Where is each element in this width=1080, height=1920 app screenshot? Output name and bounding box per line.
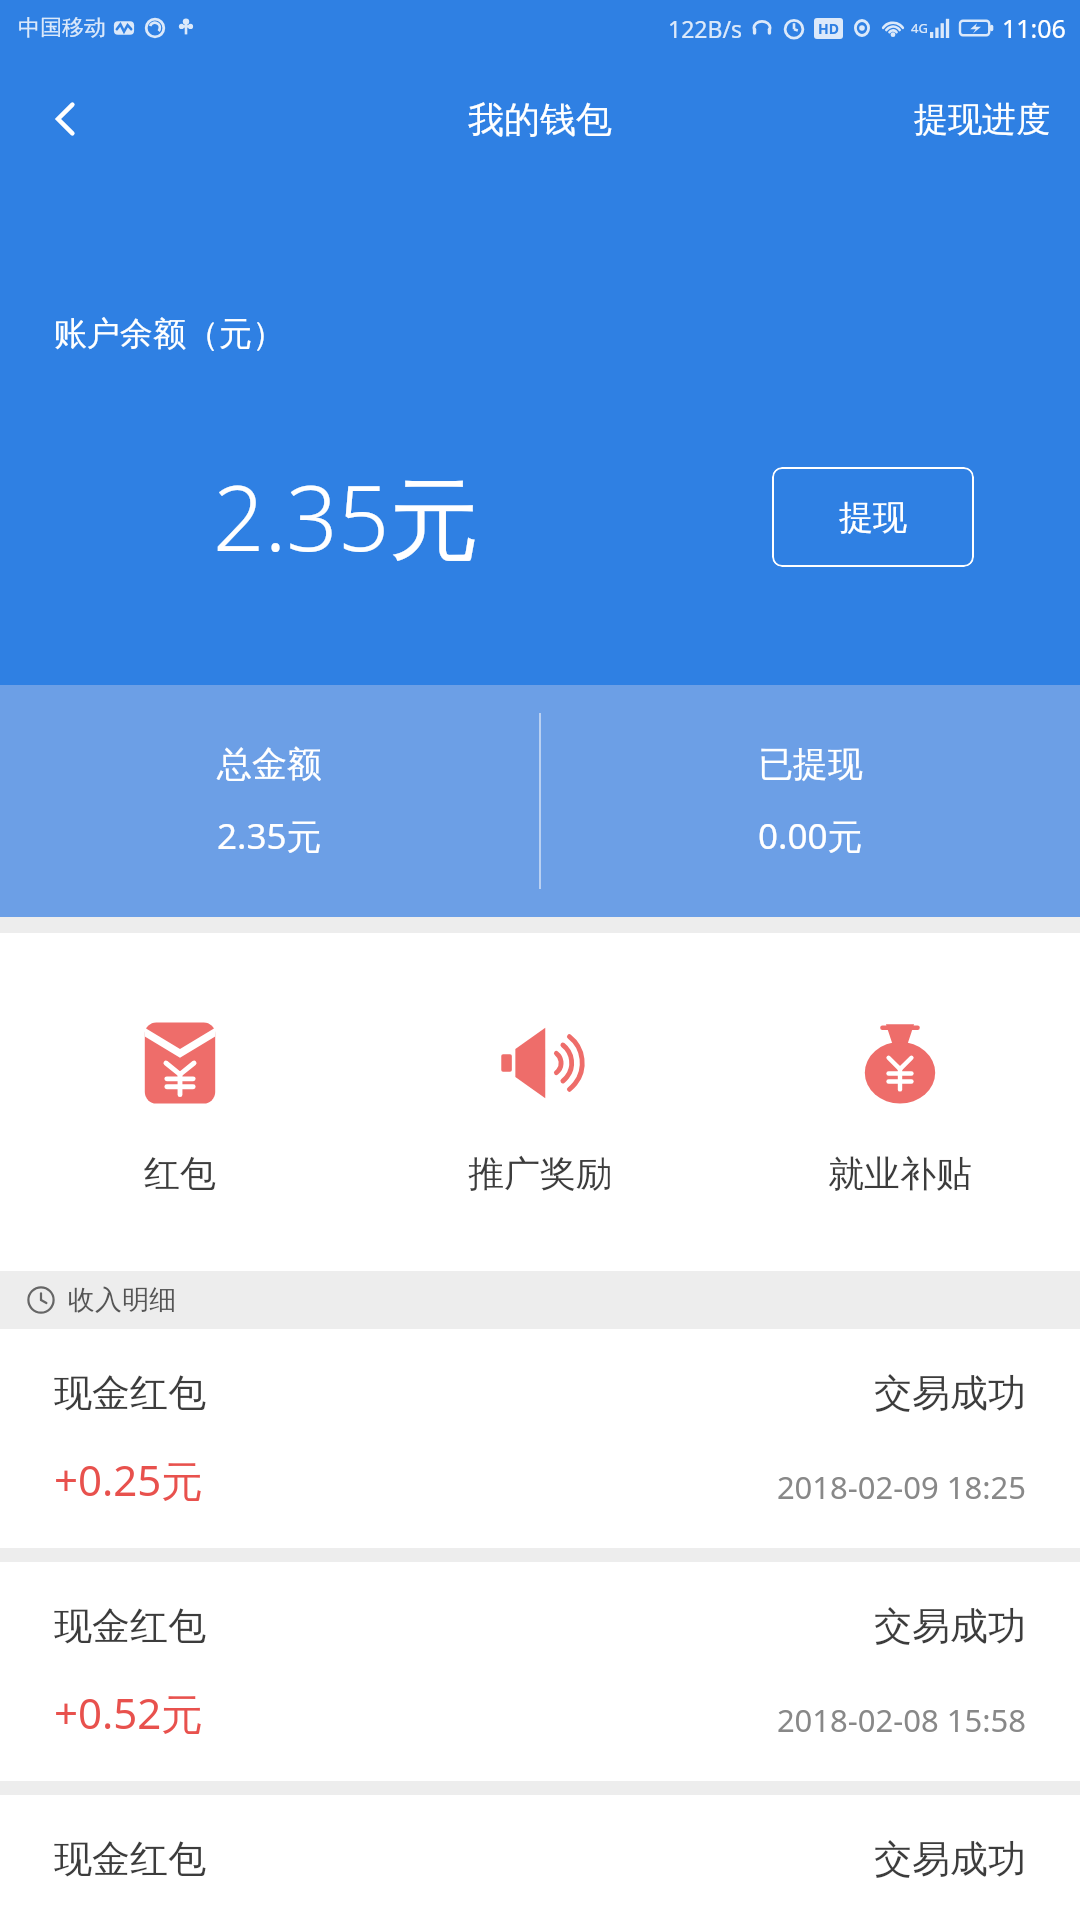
staticText: 现金红包	[54, 1602, 206, 1650]
button[interactable]: 返回	[34, 87, 98, 151]
button[interactable]: 提现	[772, 467, 974, 567]
staticText: 提现	[839, 496, 907, 539]
staticText: 4G	[911, 19, 928, 37]
staticText: 我的钱包	[468, 97, 612, 142]
staticText: 红包	[144, 1151, 216, 1196]
button[interactable]: 现金红包	[0, 1562, 1080, 1781]
staticText: 收入明细	[68, 1283, 176, 1317]
button[interactable]: 红包	[0, 933, 360, 1271]
staticText: 2018-02-09 18:25	[776, 1466, 1026, 1508]
staticText: 就业补贴	[828, 1151, 972, 1196]
staticText: 11:06	[1002, 11, 1066, 45]
staticText: +0.52元	[54, 1684, 204, 1741]
staticText: 交易成功	[874, 1602, 1026, 1650]
staticText: 总金额	[217, 742, 322, 786]
button[interactable]: 总金额	[0, 685, 539, 917]
staticText: 推广奖励	[468, 1151, 612, 1196]
button[interactable]: 现金红包	[0, 1795, 1080, 1920]
staticText: 0.00元	[758, 812, 863, 860]
staticText: 交易成功	[874, 1369, 1026, 1417]
staticText: 中国移动	[18, 14, 106, 42]
button[interactable]: 提现进度	[904, 88, 1060, 151]
staticText: 现金红包	[54, 1835, 206, 1880]
staticText: HD	[818, 19, 839, 38]
staticText: 账户余额（元）	[54, 313, 285, 355]
staticText: 已提现	[758, 742, 863, 786]
staticText: 交易成功	[874, 1835, 1026, 1880]
staticText: 2018-02-08 15:58	[776, 1699, 1026, 1741]
button[interactable]: 现金红包	[0, 1329, 1080, 1548]
button[interactable]: 已提现	[541, 685, 1080, 917]
staticText: 2.35元	[213, 455, 480, 578]
staticText: 122B/s	[668, 13, 742, 44]
button[interactable]: 就业补贴	[720, 933, 1080, 1271]
staticText: 2.35元	[217, 812, 322, 860]
button[interactable]: 推广奖励	[360, 933, 720, 1271]
staticText: 提现进度	[914, 98, 1050, 141]
staticText: +0.25元	[54, 1451, 204, 1508]
staticText: 现金红包	[54, 1369, 206, 1417]
